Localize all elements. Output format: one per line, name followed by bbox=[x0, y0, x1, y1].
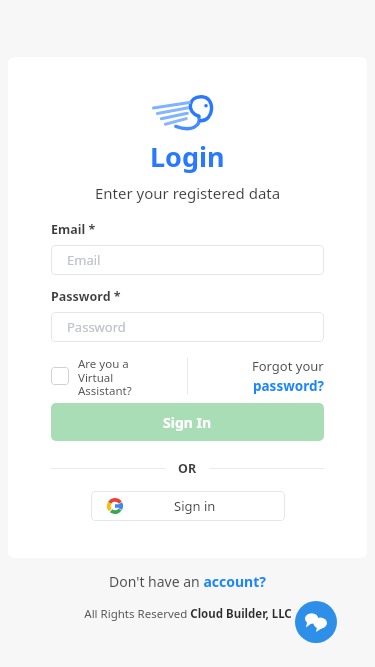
staticText: Password bbox=[67, 318, 126, 336]
button[interactable]: Sign in bbox=[91, 491, 285, 521]
button[interactable]: Sign In bbox=[51, 403, 324, 441]
button[interactable]: Don't have an account? bbox=[109, 572, 266, 591]
staticText: Sign In bbox=[163, 413, 212, 432]
staticText: Email * bbox=[51, 221, 96, 238]
button[interactable]: Are you a Virtual Assistant? bbox=[51, 356, 187, 396]
button[interactable]: Email bbox=[51, 245, 324, 275]
staticText: Email bbox=[67, 251, 101, 269]
staticText: Enter your registered data bbox=[95, 183, 281, 203]
staticText: Don't have an account? bbox=[109, 572, 266, 591]
staticText: Login bbox=[150, 138, 225, 175]
staticText: Password * bbox=[51, 288, 121, 305]
staticText: All Rights Reserved Cloud Builder, LLC bbox=[84, 606, 292, 622]
staticText: Are you a Virtual Assistant? bbox=[78, 356, 132, 396]
staticText: password? bbox=[253, 377, 324, 395]
staticText: OR bbox=[178, 460, 197, 477]
button[interactable]: Password bbox=[51, 312, 324, 342]
button[interactable]: Open chat support bbox=[295, 601, 337, 643]
staticText: Forgot your bbox=[252, 357, 324, 375]
staticText: Sign in bbox=[174, 497, 216, 515]
button[interactable]: Forgot your bbox=[188, 357, 324, 395]
